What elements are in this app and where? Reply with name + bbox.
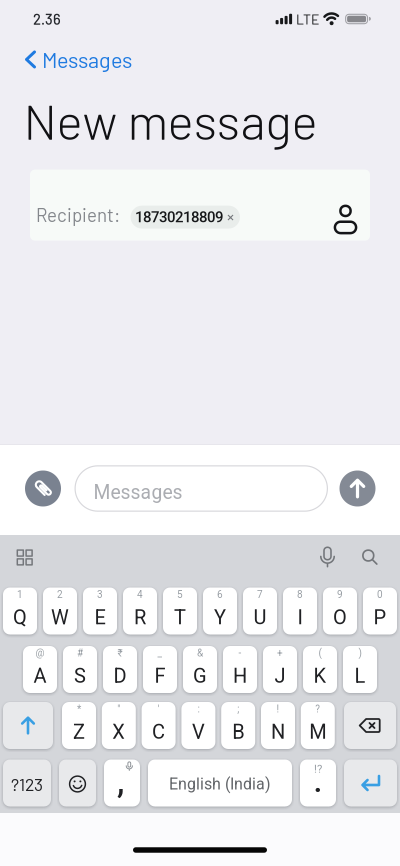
- button[interactable]: ₹: [103, 646, 137, 693]
- staticText: Messages: [42, 46, 132, 72]
- staticText: -: [238, 647, 241, 659]
- staticText: +: [277, 647, 283, 659]
- button[interactable]: ): [343, 646, 377, 693]
- staticText: 1: [17, 589, 23, 600]
- button[interactable]: ;: [221, 702, 255, 749]
- button[interactable]: (: [303, 646, 337, 693]
- staticText: ": [117, 703, 120, 715]
- staticText: ?: [315, 703, 320, 715]
- button[interactable]: Numbers: [3, 759, 51, 806]
- button[interactable]: Comma: [104, 759, 140, 806]
- staticText: Z: [73, 720, 85, 743]
- staticText: #: [77, 647, 83, 659]
- button[interactable]: Attach file: [25, 470, 61, 506]
- staticText: !: [276, 703, 279, 715]
- staticText: S: [74, 664, 86, 687]
- button[interactable]: Search: [362, 549, 378, 565]
- button[interactable]: Delete: [344, 702, 396, 749]
- staticText: 9: [337, 589, 343, 600]
- button[interactable]: #: [63, 646, 97, 693]
- staticText: W: [51, 606, 69, 629]
- button[interactable]: !: [261, 702, 295, 749]
- staticText: 4: [137, 589, 143, 600]
- button[interactable]: 7: [243, 587, 277, 634]
- staticText: Y: [214, 606, 226, 629]
- button[interactable]: ': [142, 702, 176, 749]
- button[interactable]: 0: [363, 587, 397, 634]
- staticText: New message: [23, 90, 317, 150]
- staticText: I: [297, 606, 302, 629]
- staticText: 0: [377, 589, 383, 600]
- button[interactable]: _: [143, 646, 177, 693]
- staticText: Q: [13, 606, 27, 629]
- staticText: V: [192, 720, 205, 743]
- button[interactable]: Back to Messages: [24, 46, 132, 72]
- staticText: ;: [237, 703, 239, 715]
- button[interactable]: @: [23, 646, 57, 693]
- button[interactable]: 9: [323, 587, 357, 634]
- button[interactable]: Remove recipient 18730218809: [130, 206, 240, 229]
- button[interactable]: &: [183, 646, 217, 693]
- staticText: A: [33, 664, 46, 687]
- staticText: J: [274, 664, 285, 687]
- button[interactable]: 1: [3, 587, 37, 634]
- staticText: 8: [297, 589, 303, 600]
- staticText: M: [309, 720, 326, 743]
- staticText: O: [333, 606, 347, 629]
- staticText: ₹: [117, 647, 122, 659]
- button[interactable]: 4: [123, 587, 157, 634]
- staticText: !?: [314, 762, 322, 776]
- button[interactable]: *: [62, 702, 96, 749]
- staticText: English (India): [169, 775, 271, 793]
- button[interactable]: 5: [163, 587, 197, 634]
- button[interactable]: Return: [344, 759, 397, 806]
- staticText: L: [354, 664, 365, 687]
- button[interactable]: 2: [43, 587, 77, 634]
- staticText: @: [35, 647, 44, 659]
- staticText: 2.36: [33, 10, 61, 28]
- staticText: 6: [217, 589, 223, 600]
- staticText: Recipient:: [36, 203, 120, 226]
- staticText: 2: [57, 589, 63, 600]
- button[interactable]: :: [181, 702, 215, 749]
- staticText: Messages: [93, 481, 182, 504]
- staticText: X: [112, 720, 125, 743]
- staticText: ?123: [11, 773, 43, 794]
- button[interactable]: Period: [300, 759, 336, 806]
- staticText: 5: [177, 589, 183, 600]
- staticText: B: [232, 720, 244, 743]
- staticText: LTE: [296, 11, 319, 27]
- button[interactable]: -: [223, 646, 257, 693]
- staticText: D: [113, 664, 126, 687]
- button[interactable]: Keyboard apps: [16, 549, 32, 565]
- staticText: 3: [97, 589, 103, 600]
- staticText: P: [373, 606, 386, 629]
- staticText: R: [134, 606, 146, 629]
- button[interactable]: Space: [148, 759, 292, 806]
- button[interactable]: ": [102, 702, 136, 749]
- staticText: K: [313, 664, 326, 687]
- staticText: E: [94, 606, 105, 629]
- button[interactable]: 6: [203, 587, 237, 634]
- staticText: U: [253, 606, 266, 629]
- staticText: ): [358, 647, 361, 659]
- staticText: 7: [257, 589, 263, 600]
- staticText: &: [197, 647, 203, 659]
- button[interactable]: Send: [339, 470, 375, 506]
- button[interactable]: 8: [283, 587, 317, 634]
- staticText: T: [174, 606, 186, 629]
- button[interactable]: Voice input: [320, 546, 335, 568]
- button[interactable]: Emoji: [59, 759, 96, 806]
- button[interactable]: 3: [83, 587, 117, 634]
- button[interactable]: +: [263, 646, 297, 693]
- button[interactable]: Choose contact: [334, 205, 357, 235]
- staticText: _: [157, 647, 162, 659]
- button[interactable]: Message text field: [74, 465, 328, 512]
- button[interactable]: Shift: [3, 702, 53, 749]
- staticText: :: [197, 703, 199, 715]
- button[interactable]: ?: [301, 702, 335, 749]
- staticText: (: [318, 647, 321, 659]
- staticText: .: [313, 762, 322, 800]
- staticText: H: [233, 664, 247, 687]
- staticText: N: [271, 720, 285, 743]
